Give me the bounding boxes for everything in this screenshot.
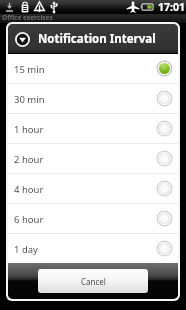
button[interactable]: 4 hour xyxy=(8,174,178,203)
staticText: 4 hour xyxy=(14,183,44,196)
button[interactable]: 1 hour xyxy=(8,114,178,143)
staticText: Office exercises xyxy=(2,13,53,22)
staticText: 17:01 xyxy=(158,0,185,14)
staticText: 1 day xyxy=(14,243,38,256)
button[interactable]: 15 min xyxy=(8,54,178,83)
button[interactable]: 6 hour xyxy=(8,204,178,233)
button[interactable]: Cancel xyxy=(38,269,148,293)
staticText: Notification Interval xyxy=(38,31,156,47)
staticText: 2 hour xyxy=(14,153,44,166)
staticText: 1 hour xyxy=(14,123,44,136)
staticText: 15 min xyxy=(14,63,45,76)
staticText: Cancel xyxy=(81,276,106,287)
staticText: 30 min xyxy=(14,93,45,106)
button[interactable]: 2 hour xyxy=(8,144,178,173)
staticText: 6 hour xyxy=(14,213,44,226)
button[interactable]: 1 day xyxy=(8,234,178,263)
button[interactable]: 30 min xyxy=(8,84,178,113)
